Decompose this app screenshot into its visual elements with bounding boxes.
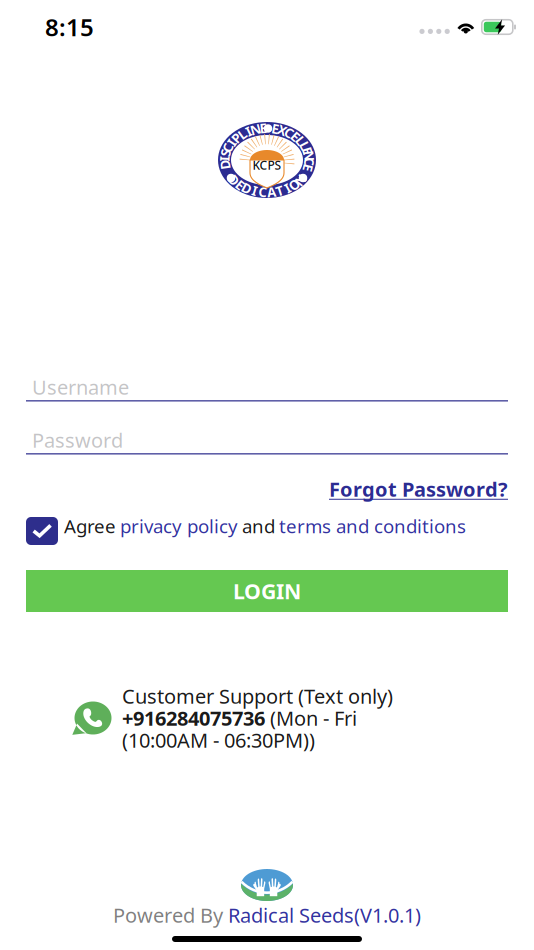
staticText: C — [285, 124, 294, 142]
button[interactable]: Forgot Password? — [329, 477, 508, 501]
staticText: P — [232, 129, 240, 147]
staticText: E — [304, 142, 311, 159]
button[interactable]: terms and conditions — [279, 514, 466, 538]
staticText: E — [260, 119, 267, 137]
staticText: D — [229, 171, 239, 189]
staticText: C — [258, 183, 267, 201]
button[interactable]: LOGIN — [26, 570, 508, 612]
staticText: E — [272, 120, 279, 137]
staticText: (10:00AM - 06:30PM)) — [122, 727, 315, 753]
staticText: Password — [32, 427, 123, 453]
staticText: Agree — [64, 514, 116, 538]
staticText: I — [252, 182, 257, 199]
staticText: D — [242, 179, 252, 197]
staticText: LOGIN — [233, 577, 301, 605]
staticText: I — [222, 150, 227, 168]
staticText: D — [220, 156, 230, 173]
staticText: A — [267, 183, 276, 201]
staticText: Forgot Password? — [329, 476, 508, 502]
staticText: E — [305, 159, 312, 176]
staticText: I — [285, 179, 290, 197]
staticText: X — [278, 121, 287, 139]
staticText: L — [301, 136, 308, 154]
button[interactable]: privacy policy — [120, 514, 238, 538]
staticText: C — [223, 139, 232, 156]
staticText: N — [250, 120, 261, 138]
staticText: I — [229, 134, 234, 151]
staticText: and — [242, 514, 275, 538]
staticText: Username — [32, 374, 129, 400]
staticText: +916284075736 (Mon - Fri — [122, 705, 357, 731]
staticText: KCPS — [252, 157, 281, 173]
staticText: I — [246, 122, 251, 140]
staticText: privacy policy — [120, 514, 238, 538]
button[interactable]: Agree to privacy policy and terms and co… — [26, 512, 58, 540]
staticText: Powered By — [113, 902, 228, 928]
staticText: terms and conditions — [279, 514, 466, 538]
staticText: 8:15 — [45, 11, 94, 43]
staticText: Radical Seeds(V1.0.1) — [228, 902, 421, 928]
staticText: C — [305, 153, 314, 171]
staticText: S — [222, 144, 229, 162]
staticText: L — [297, 131, 304, 149]
staticText: O — [289, 176, 300, 193]
staticText: T — [276, 182, 284, 199]
staticText: N — [295, 171, 306, 189]
staticText: L — [238, 125, 245, 143]
staticText: Customer Support (Text only) — [122, 683, 393, 709]
staticText: E — [236, 176, 243, 193]
staticText: N — [304, 147, 315, 165]
staticText: E — [292, 127, 299, 145]
